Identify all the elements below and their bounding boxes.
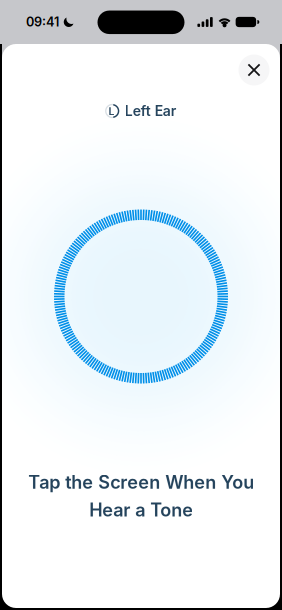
button[interactable]: Close xyxy=(234,50,274,90)
staticText: Left Ear xyxy=(125,102,177,119)
staticText: Hear a Tone xyxy=(89,499,193,521)
staticText: Tap the Screen When You xyxy=(28,471,254,493)
staticText: L xyxy=(108,105,114,118)
staticText: 09:41 xyxy=(26,14,59,30)
